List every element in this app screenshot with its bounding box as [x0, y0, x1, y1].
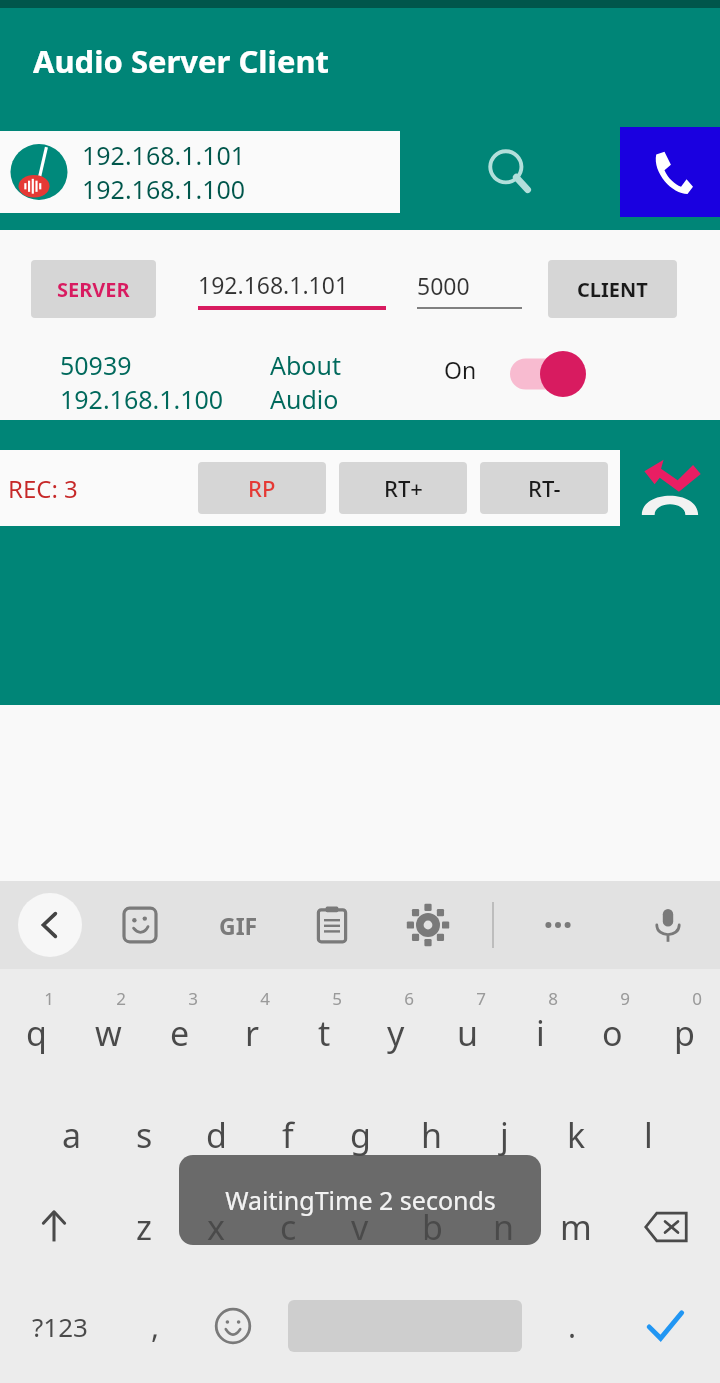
staticText: e: [170, 1010, 190, 1056]
button[interactable]: GIF: [208, 895, 268, 955]
staticText: 0: [692, 987, 702, 1010]
button[interactable]: End call: [620, 450, 720, 526]
button[interactable]: Backspace: [612, 1177, 720, 1277]
staticText: Audio Server Client: [33, 40, 329, 82]
staticText: 5: [332, 987, 342, 1010]
button[interactable]: RT+: [339, 462, 467, 514]
button[interactable]: About: [270, 348, 410, 416]
staticText: 192.168.1.100: [60, 382, 224, 416]
button[interactable]: g: [324, 1073, 396, 1177]
button[interactable]: d: [180, 1073, 252, 1177]
button[interactable]: Back: [18, 893, 82, 957]
staticText: 6: [404, 987, 414, 1010]
staticText: 1: [44, 987, 54, 1010]
button[interactable]: Call: [620, 127, 720, 217]
button[interactable]: Emoji: [190, 1277, 276, 1375]
button[interactable]: Shift: [0, 1177, 108, 1277]
button[interactable]: j: [468, 1073, 540, 1177]
staticText: s: [136, 1112, 153, 1158]
button[interactable]: Sticker: [112, 897, 168, 953]
staticText: ?123: [32, 1309, 88, 1344]
button[interactable]: b: [396, 1177, 468, 1277]
button[interactable]: 7: [432, 969, 504, 1073]
staticText: n: [493, 1204, 515, 1250]
staticText: About: [270, 348, 341, 382]
staticText: r: [245, 1010, 260, 1056]
staticText: g: [350, 1112, 371, 1158]
staticText: 4: [260, 987, 270, 1010]
button[interactable]: Search: [400, 113, 620, 230]
button[interactable]: SERVER: [31, 260, 156, 318]
button[interactable]: 6: [360, 969, 432, 1073]
staticText: y: [387, 1010, 405, 1056]
staticText: 5000: [417, 270, 470, 301]
staticText: v: [351, 1204, 369, 1250]
staticText: c: [280, 1204, 297, 1250]
button[interactable]: 3: [144, 969, 216, 1073]
button[interactable]: Settings: [400, 897, 456, 953]
button[interactable]: l: [612, 1073, 684, 1177]
staticText: 3: [188, 987, 198, 1010]
button[interactable]: a: [36, 1073, 108, 1177]
button[interactable]: 5: [288, 969, 360, 1073]
button[interactable]: m: [540, 1177, 612, 1277]
staticText: f: [282, 1112, 294, 1158]
button[interactable]: 8: [504, 969, 576, 1073]
staticText: j: [500, 1112, 509, 1158]
staticText: m: [560, 1204, 592, 1250]
button[interactable]: k: [540, 1073, 612, 1177]
button[interactable]: 4: [216, 969, 288, 1073]
staticText: x: [207, 1204, 225, 1250]
staticText: p: [674, 1010, 695, 1056]
button[interactable]: 1: [0, 969, 72, 1073]
button[interactable]: CLIENT: [548, 260, 677, 318]
staticText: 192.168.1.101: [82, 138, 246, 172]
staticText: i: [536, 1010, 545, 1056]
staticText: 192.168.1.100: [82, 172, 246, 206]
button[interactable]: f: [252, 1073, 324, 1177]
button[interactable]: x: [180, 1177, 252, 1277]
staticText: 8: [548, 987, 558, 1010]
staticText: GIF: [219, 910, 258, 941]
button[interactable]: s: [108, 1073, 180, 1177]
button[interactable]: c: [252, 1177, 324, 1277]
button[interactable]: RP: [198, 462, 326, 514]
button[interactable]: 0: [648, 969, 720, 1073]
button[interactable]: Voice input: [640, 897, 696, 953]
button[interactable]: ?123: [0, 1277, 120, 1375]
staticText: z: [136, 1204, 152, 1250]
staticText: .: [568, 1306, 577, 1347]
staticText: h: [421, 1112, 443, 1158]
staticText: 9: [620, 987, 630, 1010]
button[interactable]: h: [396, 1073, 468, 1177]
staticText: w: [95, 1010, 122, 1056]
staticText: RP: [248, 473, 276, 503]
button[interactable]: .: [534, 1277, 610, 1375]
button[interactable]: n: [468, 1177, 540, 1277]
button[interactable]: RT-: [480, 462, 608, 514]
button[interactable]: Clipboard: [304, 897, 360, 953]
button[interactable]: 192.168.1.101: [0, 131, 400, 213]
button[interactable]: Audio toggle: [510, 346, 620, 402]
staticText: CLIENT: [577, 276, 648, 303]
staticText: 7: [476, 987, 486, 1010]
button[interactable]: 9: [576, 969, 648, 1073]
staticText: b: [422, 1204, 443, 1250]
staticText: d: [206, 1112, 227, 1158]
button[interactable]: More options: [530, 897, 586, 953]
staticText: 50939: [60, 348, 132, 382]
staticText: On: [444, 354, 477, 385]
staticText: q: [26, 1010, 47, 1056]
staticText: 2: [116, 987, 126, 1010]
staticText: Audio: [270, 382, 339, 416]
button[interactable]: 2: [72, 969, 144, 1073]
staticText: k: [567, 1112, 586, 1158]
button[interactable]: z: [108, 1177, 180, 1277]
staticText: t: [318, 1010, 331, 1056]
staticText: RT+: [384, 473, 423, 503]
button[interactable]: v: [324, 1177, 396, 1277]
button[interactable]: ,: [120, 1277, 190, 1375]
staticText: ,: [151, 1306, 160, 1347]
button[interactable]: Enter: [610, 1277, 720, 1375]
